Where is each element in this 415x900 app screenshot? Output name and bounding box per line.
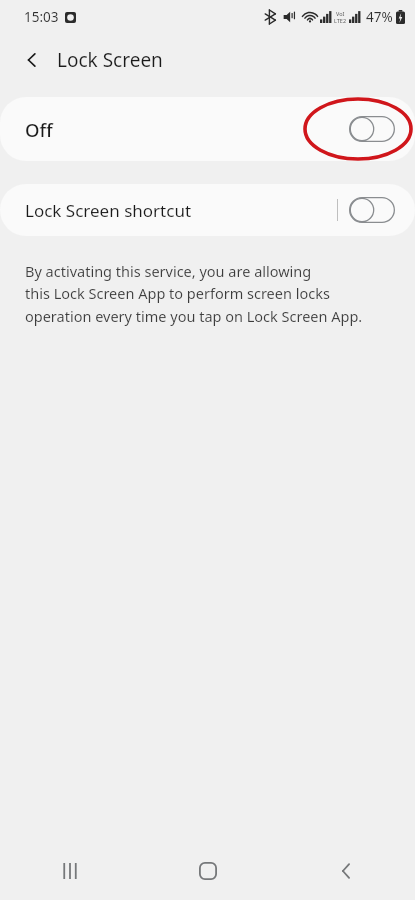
staticText: VoI: [336, 10, 345, 17]
staticText: LTE2: [334, 17, 347, 24]
button[interactable]: Toggle Lock Screen shortcut: [348, 195, 396, 225]
button[interactable]: Back: [14, 42, 50, 78]
button[interactable]: Recents: [0, 842, 139, 900]
button[interactable]: Lock Screen shortcut: [0, 184, 415, 236]
staticText: Off: [25, 117, 53, 142]
staticText: 15:03: [24, 8, 59, 26]
staticText: 47%: [366, 8, 393, 26]
button[interactable]: Home: [139, 842, 277, 900]
staticText: Lock Screen: [57, 47, 163, 73]
button[interactable]: Toggle Off: [348, 114, 396, 144]
button[interactable]: Off: [0, 97, 415, 161]
staticText: Lock Screen shortcut: [25, 199, 192, 222]
button[interactable]: Back: [277, 842, 415, 900]
staticText: By activating this service, you are allo…: [25, 261, 363, 326]
